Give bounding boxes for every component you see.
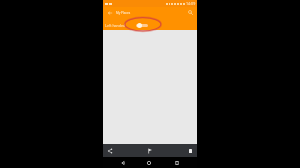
button[interactable]: Toggle left handed [134,22,147,29]
button[interactable]: Recents [171,157,183,168]
staticText: My Places [116,11,131,15]
button[interactable]: Delete [185,146,195,156]
button[interactable]: Home [143,157,155,168]
staticText: Left handed [105,23,126,28]
button[interactable]: Flag [145,146,155,156]
button[interactable]: Back [105,8,114,17]
button[interactable]: Share [105,146,115,156]
button[interactable]: Back [117,157,129,168]
button[interactable]: Search [186,8,195,17]
staticText: 14:09 [186,1,196,6]
